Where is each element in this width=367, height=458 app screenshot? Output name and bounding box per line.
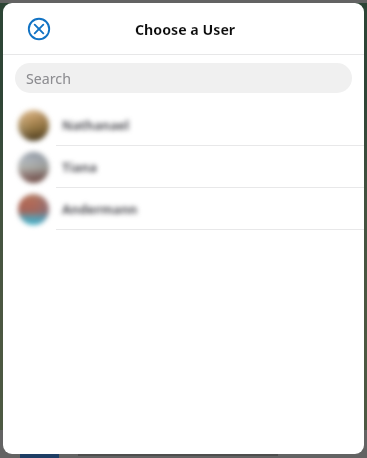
button[interactable]: Search	[15, 63, 352, 93]
staticText: Search	[26, 69, 71, 88]
staticText: Choose a User	[135, 20, 236, 39]
button[interactable]: Nathanael	[3, 104, 364, 146]
button[interactable]: Tiana	[3, 146, 364, 188]
staticText: Nathanael	[62, 116, 130, 133]
button[interactable]: Andermann	[3, 188, 364, 230]
button[interactable]: Close	[23, 13, 55, 45]
staticText: Tiana	[62, 158, 97, 175]
staticText: Andermann	[62, 200, 138, 217]
